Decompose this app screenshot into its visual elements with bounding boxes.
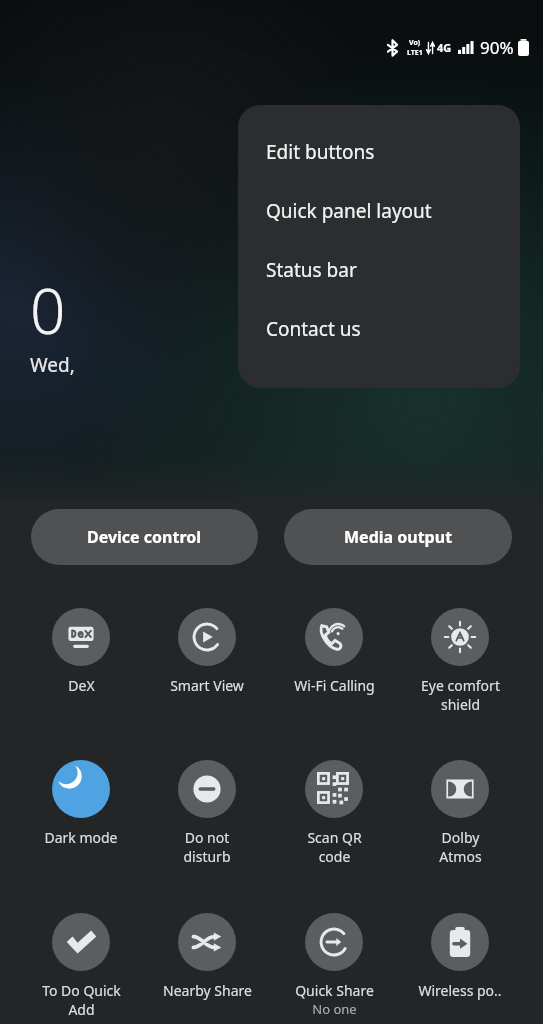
staticText: Edit buttons (266, 139, 375, 165)
button[interactable]: Device control (31, 509, 258, 565)
staticText: Quick panel layout (266, 198, 432, 224)
staticText: Wireless po.. (418, 981, 502, 1000)
staticText: 90% (480, 36, 514, 59)
button[interactable]: Dark mode (20, 760, 142, 847)
staticText: Quick Share (295, 981, 374, 1000)
button[interactable]: Eye comfort shield (399, 608, 521, 714)
staticText: Device control (87, 526, 202, 548)
button[interactable]: Dolby Atmos (399, 760, 521, 866)
staticText: Contact us (266, 316, 361, 342)
button[interactable]: Smart View (146, 608, 268, 695)
staticText: Smart View (170, 676, 244, 695)
staticText: Vo) (409, 38, 421, 48)
button[interactable]: Contact us (238, 283, 520, 342)
button[interactable]: Do not disturb (146, 760, 268, 866)
staticText: Dolby Atmos (439, 828, 482, 866)
button[interactable]: Nearby Share (146, 913, 268, 1000)
button[interactable]: Media output (284, 509, 512, 565)
button[interactable]: Edit buttons (238, 105, 520, 165)
staticText: Nearby Share (163, 981, 252, 1000)
button[interactable]: Status bar (238, 224, 520, 283)
staticText: DeX (68, 676, 95, 695)
button[interactable]: Quick panel layout (238, 165, 520, 224)
button[interactable]: Wi-Fi Calling (273, 608, 395, 695)
staticText: Scan QR code (307, 828, 362, 866)
staticText: Dark mode (44, 828, 118, 847)
staticText: To Do Quick Add (42, 981, 121, 1019)
button[interactable]: Scan QR code (273, 760, 395, 866)
staticText: Status bar (266, 257, 357, 283)
staticText: No one (312, 1000, 357, 1018)
staticText: Do not disturb (183, 828, 231, 866)
button[interactable]: DeX (20, 608, 142, 695)
button[interactable]: To Do Quick Add (20, 913, 142, 1019)
staticText: Wi-Fi Calling (294, 676, 375, 695)
staticText: 0 (30, 268, 66, 352)
staticText: Wed, (30, 352, 80, 378)
staticText: Media output (344, 526, 453, 548)
staticText: LTE1 (407, 48, 423, 58)
staticText: 4G (437, 40, 452, 55)
button[interactable]: Quick Share (273, 913, 395, 1018)
staticText: Eye comfort shield (421, 676, 500, 714)
button[interactable]: Wireless po.. (399, 913, 521, 1000)
